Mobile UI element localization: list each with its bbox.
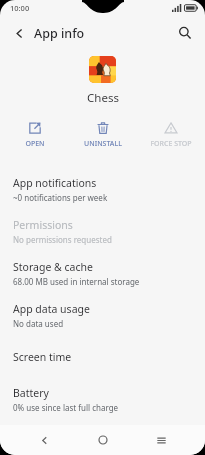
staticText: OPEN [25,139,45,149]
staticText: No permissions requested [13,234,112,245]
staticText: ~0 notifications per week [13,192,108,203]
button[interactable]: Screen time [0,336,205,378]
staticText: Storage & cache [13,260,93,274]
button[interactable]: Battery [0,378,205,420]
button[interactable]: Back [4,18,34,48]
staticText: 68.00 MB used in internal storage [13,276,140,287]
button[interactable]: Back [30,426,58,454]
staticText: 0% use since last full charge [13,402,119,413]
button[interactable]: Permissions [0,210,205,252]
button[interactable]: App data usage [0,294,205,336]
staticText: App notifications [13,176,97,190]
staticText: Permissions [13,218,73,232]
staticText: App data usage [13,302,90,316]
button[interactable]: App notifications [0,168,205,210]
button[interactable]: Search [170,18,200,48]
button[interactable]: OPEN [0,119,69,151]
staticText: FORCE STOP [150,139,192,149]
staticText: Battery [13,386,49,400]
button[interactable]: FORCE STOP [137,119,205,151]
staticText: App info [34,25,85,42]
button[interactable]: Recent apps [147,426,175,454]
staticText: No data used [13,318,64,329]
staticText: Chess [87,90,119,106]
staticText: UNINSTALL [84,139,122,149]
staticText: 10:00 [10,3,30,13]
button[interactable]: UNINSTALL [69,119,137,151]
button[interactable]: Storage & cache [0,252,205,294]
staticText: Screen time [13,350,72,364]
button[interactable]: Home [89,426,117,454]
